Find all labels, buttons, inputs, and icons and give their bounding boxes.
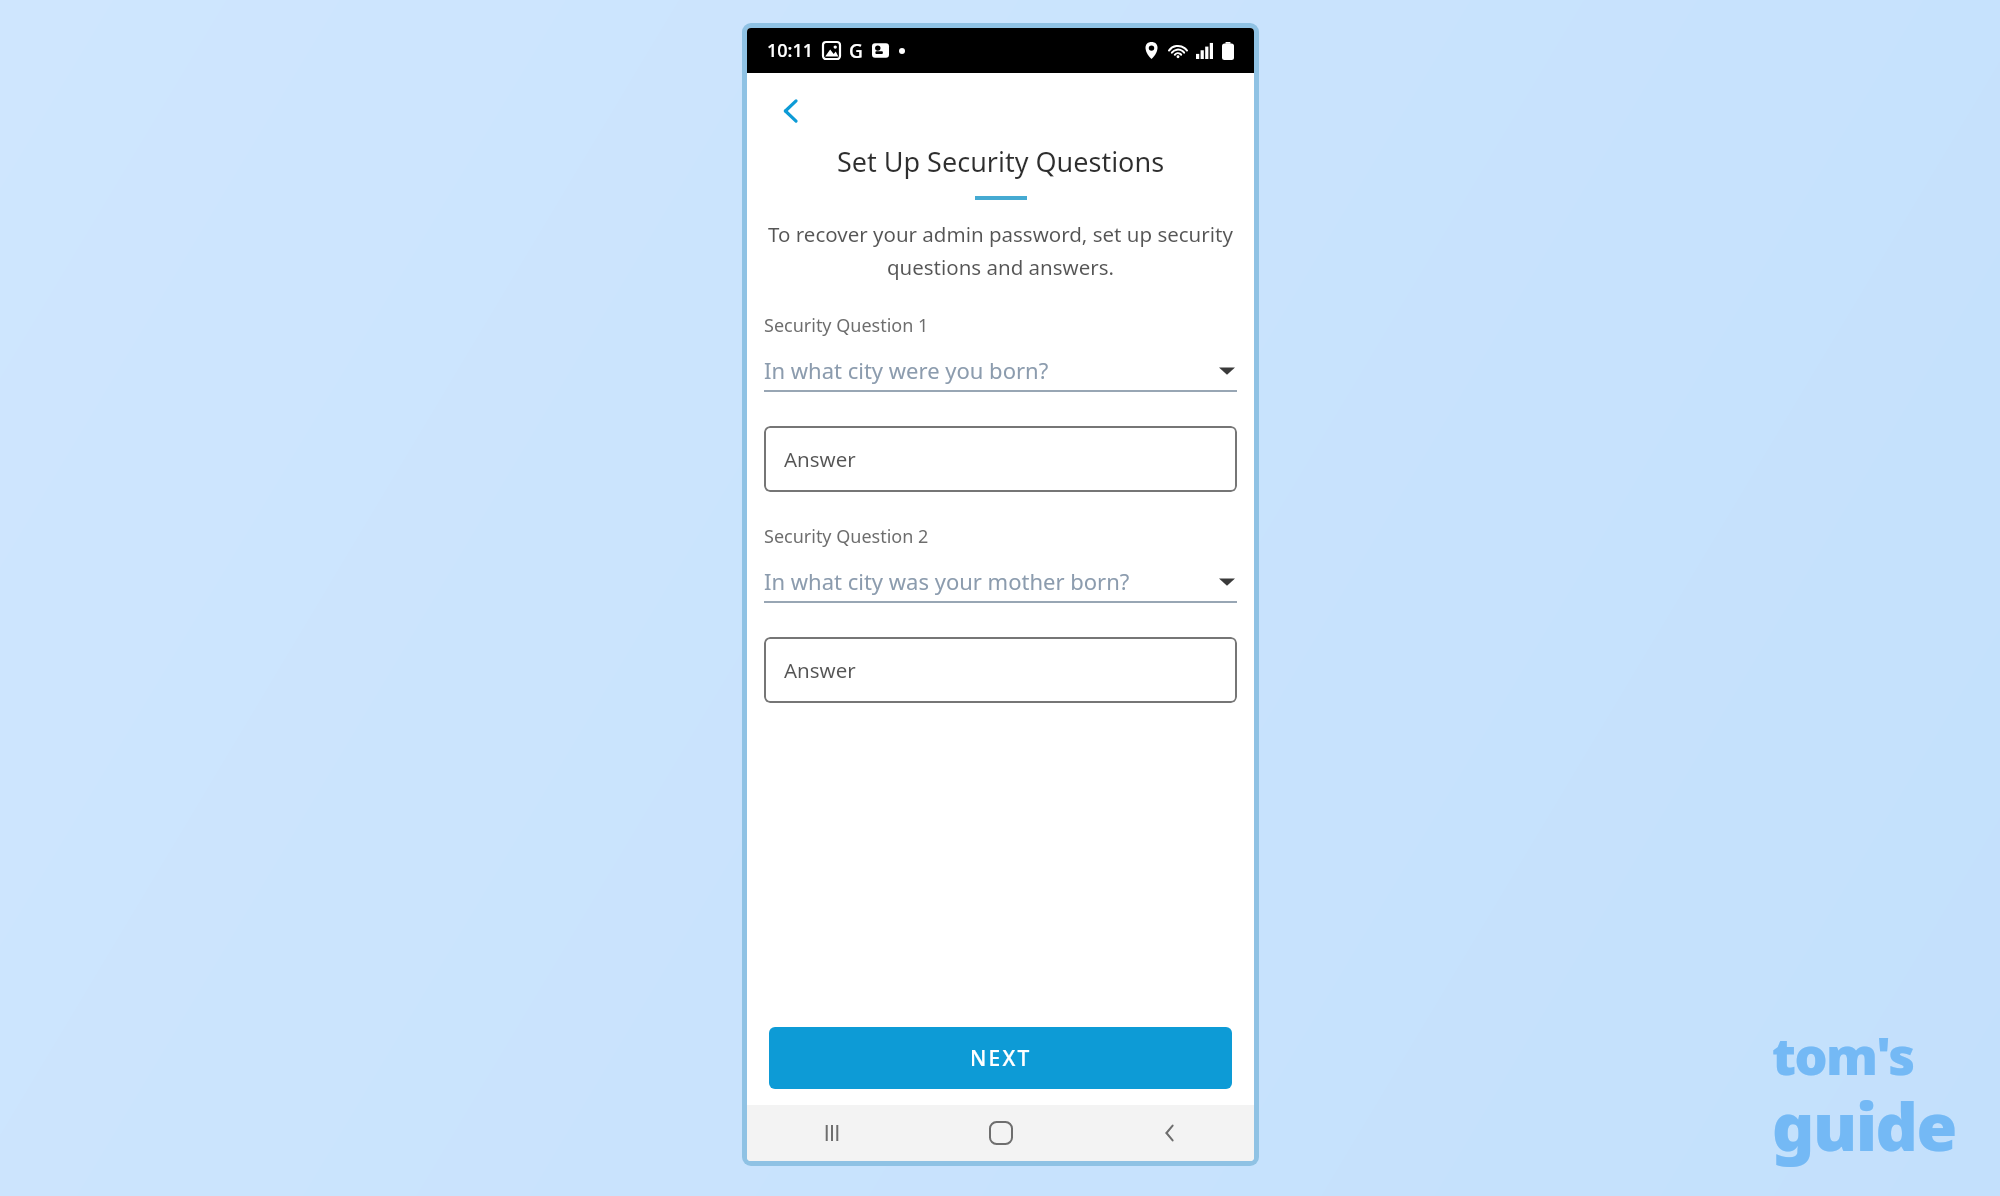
staticText: Security Question 2 <box>764 524 929 549</box>
staticText: Set Up Security Questions <box>747 143 1254 180</box>
button[interactable]: Home <box>916 1105 1085 1161</box>
button[interactable]: Back <box>767 87 815 135</box>
staticText: In what city was your mother born? <box>764 566 1219 596</box>
button[interactable]: NEXT <box>769 1027 1232 1089</box>
staticText: G <box>849 38 863 64</box>
button[interactable]: In what city were you born? <box>764 350 1237 392</box>
staticText: Security Question 1 <box>764 313 929 338</box>
button[interactable]: Recents <box>747 1105 916 1161</box>
staticText: To recover your admin password, set up s… <box>763 220 1238 281</box>
staticText: tom's <box>1772 1019 1914 1090</box>
button[interactable]: In what city was your mother born? <box>764 561 1237 603</box>
staticText: Answer <box>784 445 856 473</box>
staticText: 10:11 <box>767 38 814 63</box>
staticText: NEXT <box>970 1044 1032 1073</box>
button[interactable]: Answer <box>764 637 1237 703</box>
staticText: guide <box>1772 1080 1956 1170</box>
button[interactable]: Answer <box>764 426 1237 492</box>
staticText: In what city were you born? <box>764 355 1219 385</box>
staticText: Answer <box>784 656 856 684</box>
button[interactable]: Back <box>1085 1105 1254 1161</box>
